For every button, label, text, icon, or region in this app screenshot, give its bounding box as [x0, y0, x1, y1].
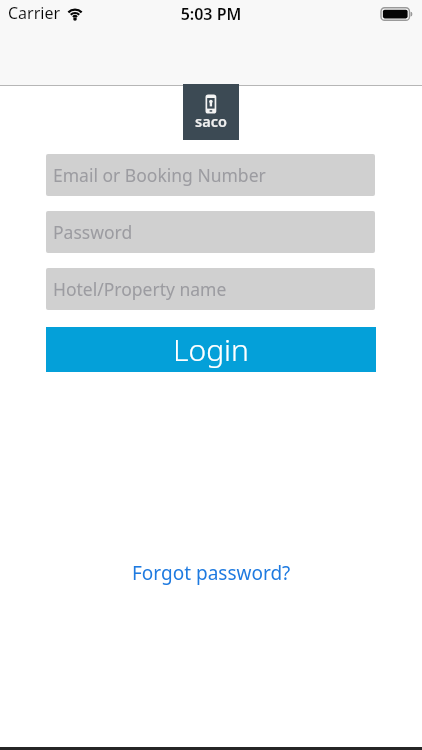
staticText: Forgot password?: [132, 560, 291, 586]
button[interactable]: Password: [46, 211, 375, 253]
staticText: Login: [173, 329, 249, 370]
button[interactable]: Forgot password?: [128, 556, 295, 590]
staticText: Hotel/Property name: [53, 277, 227, 301]
staticText: Password: [53, 220, 133, 244]
button[interactable]: Login: [46, 327, 376, 372]
staticText: 5:03 PM: [0, 3, 422, 25]
staticText: Carrier: [8, 2, 61, 24]
staticText: saco: [183, 111, 239, 131]
button[interactable]: Email or Booking Number: [46, 154, 375, 196]
button[interactable]: Hotel/Property name: [46, 268, 375, 310]
staticText: Email or Booking Number: [53, 163, 266, 187]
